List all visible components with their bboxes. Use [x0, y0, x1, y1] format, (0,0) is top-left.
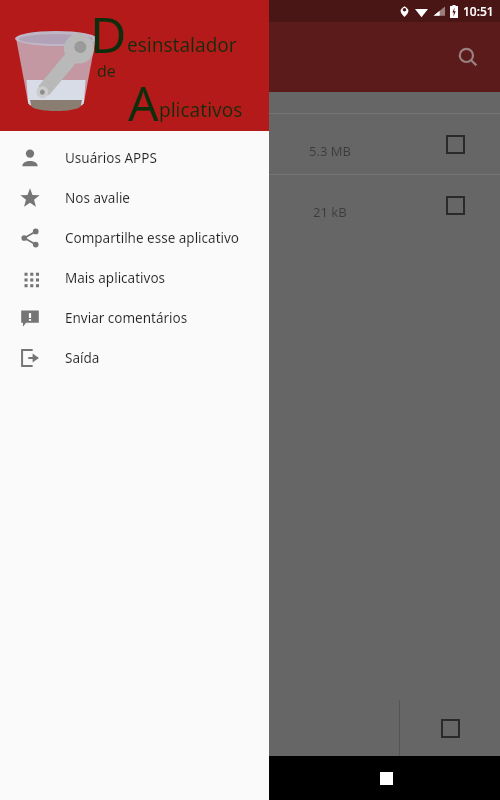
staticText: Nos avalie [65, 189, 130, 207]
button[interactable]: Search [446, 35, 490, 79]
staticText: Saída [65, 349, 100, 367]
staticText: A [128, 70, 159, 131]
button[interactable]: 5.3 MB [0, 114, 500, 174]
staticText: Compartilhe esse aplicativo [65, 229, 240, 247]
button[interactable]: alar [0, 700, 399, 756]
staticText: plicativos [159, 97, 243, 123]
staticText: 10:51 [463, 3, 494, 19]
button[interactable]: Saída [0, 338, 269, 378]
button[interactable]: Home [228, 756, 272, 800]
button[interactable]: 21 kB [0, 175, 500, 235]
button[interactable]: Enviar comentários [0, 298, 269, 338]
staticText: Mais aplicativos [65, 269, 166, 287]
button[interactable]: Nos avalie [0, 178, 269, 218]
staticText: 5.3 MB [309, 142, 351, 160]
staticText: esinstalador [127, 32, 237, 58]
staticText: D [90, 0, 127, 68]
button[interactable]: Compartilhe esse aplicativo [0, 218, 269, 258]
button[interactable]: Select all [400, 700, 500, 756]
staticText: Enviar comentários [65, 309, 188, 327]
button[interactable]: Recents [364, 756, 408, 800]
button[interactable]: Usuários APPS [0, 138, 269, 178]
button[interactable]: Mais aplicativos [0, 258, 269, 298]
staticText: de [97, 60, 116, 82]
staticText: 21 kB [313, 203, 347, 221]
staticText: Usuários APPS [65, 149, 157, 167]
